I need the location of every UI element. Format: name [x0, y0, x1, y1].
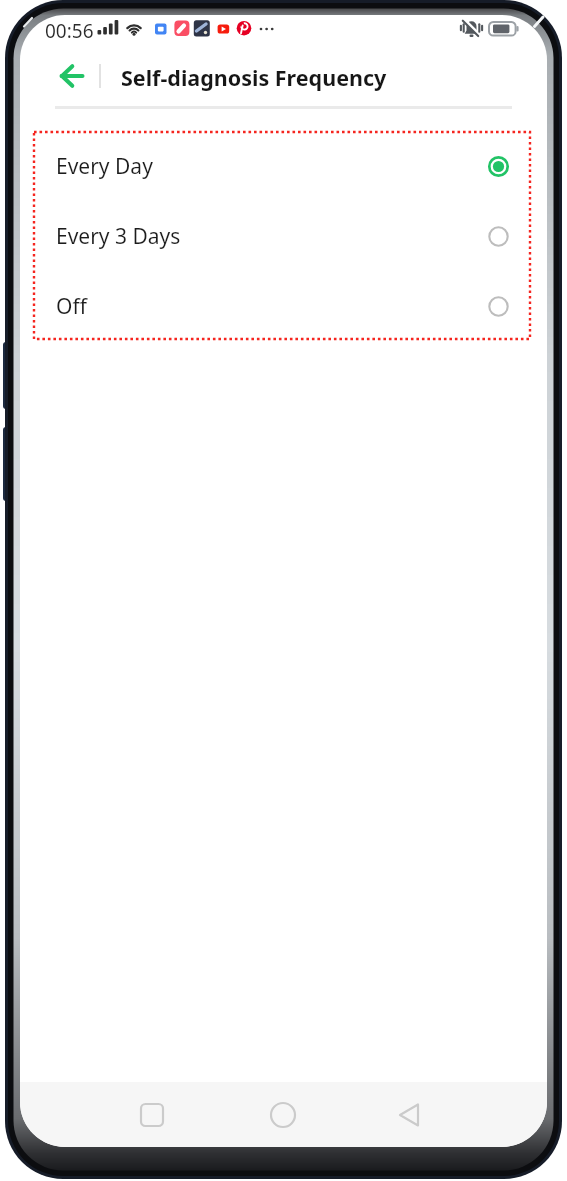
- button[interactable]: [386, 1091, 434, 1139]
- button[interactable]: [50, 57, 92, 95]
- button[interactable]: Every 3 Days: [34, 201, 530, 271]
- staticText: Off: [56, 292, 87, 321]
- staticText: Self-diagnosis Frequency: [121, 63, 387, 92]
- button[interactable]: Every Day: [34, 131, 530, 201]
- staticText: 00:56: [45, 18, 94, 44]
- button[interactable]: [259, 1091, 307, 1139]
- staticText: Every 3 Days: [56, 222, 181, 251]
- button[interactable]: [128, 1091, 176, 1139]
- staticText: Every Day: [56, 152, 153, 181]
- button[interactable]: Off: [34, 271, 530, 341]
